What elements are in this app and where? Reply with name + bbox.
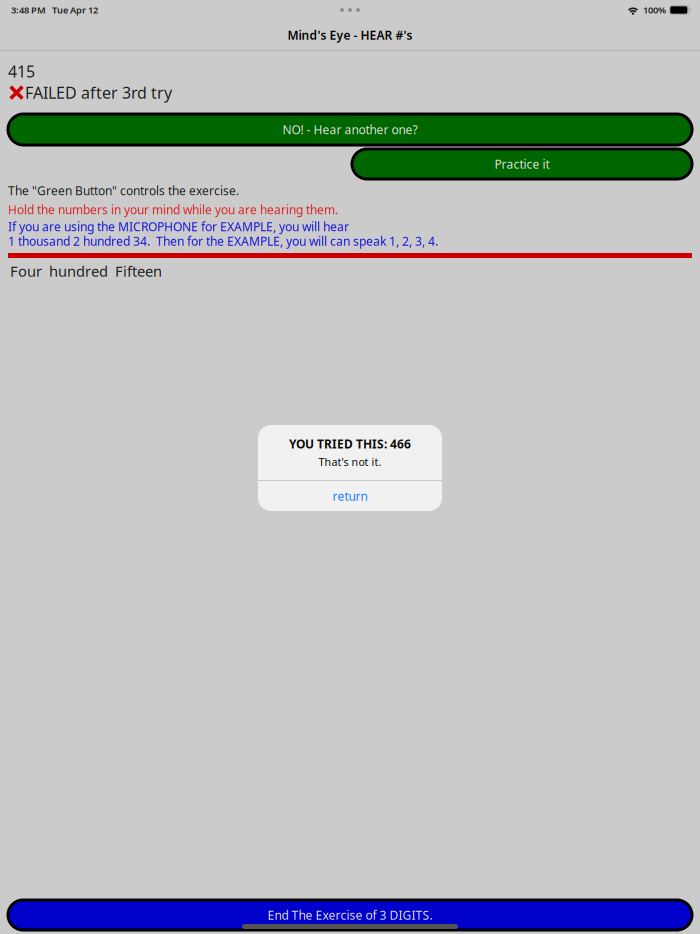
button[interactable]: Practice it [352,149,692,179]
staticText: Fifteen [115,261,162,281]
staticText: Mind's Eye - HEAR #'s [287,27,412,43]
staticText: Four [10,261,42,281]
button[interactable]: NO! - Hear another one? [8,114,692,145]
staticText: 100% [643,4,666,16]
staticText: return [332,488,367,504]
staticText: End The Exercise of 3 DIGITS. [267,907,432,923]
staticText: NO! - Hear another one? [282,121,417,137]
staticText: Hold the numbers in your mind while you … [8,201,338,217]
staticText: hundred [49,261,108,281]
staticText: YOU TRIED THIS: 466 [289,436,411,452]
staticText: That's not it. [318,455,381,469]
staticText: If you are using the MICROPHONE for EXAM… [8,218,349,234]
button[interactable]: return [258,481,442,511]
button[interactable]: End The Exercise of 3 DIGITS. [8,900,692,930]
staticText: 415 [8,61,35,82]
staticText: Practice it [494,156,549,172]
staticText: Tue Apr 12 [46,4,98,16]
staticText: The "Green Button" controls the exercise… [8,182,239,198]
staticText: 1 thousand 2 hundred 34. Then for the EX… [8,233,438,249]
staticText: 3:48 PM [11,4,46,16]
staticText: FAILED after 3rd try [25,82,172,103]
